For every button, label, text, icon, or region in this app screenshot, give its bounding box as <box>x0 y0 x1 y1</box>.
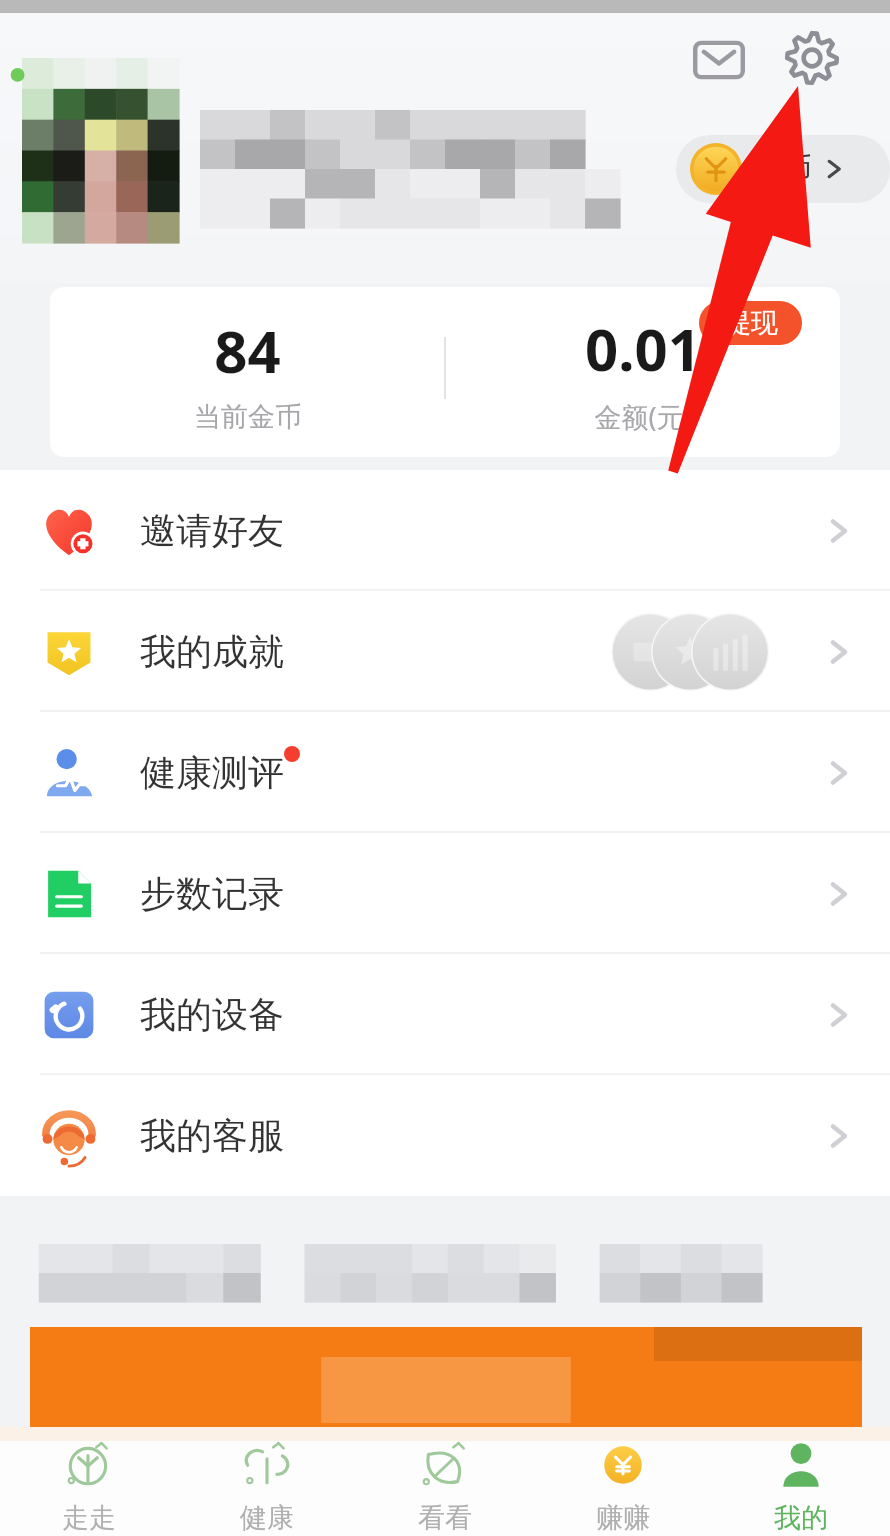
staticText: 邀请好友 <box>140 508 284 553</box>
staticText: 赚赚 <box>596 1501 650 1535</box>
button[interactable]: 我的客服 <box>0 1075 890 1196</box>
button[interactable]: 步数记录 <box>0 833 890 954</box>
staticText: 金额(元) <box>594 398 692 435</box>
button[interactable]: 走走 <box>0 1427 178 1536</box>
staticText: 步数记录 <box>140 871 284 916</box>
button[interactable]: 84 <box>50 287 840 457</box>
staticText: 84 <box>214 311 281 390</box>
button[interactable]: 健康测评 <box>0 712 890 833</box>
staticText: 我的客服 <box>140 1113 284 1158</box>
button[interactable]: Messages <box>686 27 752 93</box>
button[interactable]: 金币 <box>676 135 890 203</box>
staticText: 金币 <box>752 150 812 188</box>
button[interactable]: 邀请好友 <box>0 470 890 591</box>
staticText: 我的 <box>774 1501 828 1535</box>
button[interactable]: 我的 <box>712 1427 890 1536</box>
staticText: 当前金币 <box>194 400 302 434</box>
button[interactable]: 健康 <box>178 1427 356 1536</box>
button[interactable]: 赚赚 <box>534 1427 712 1536</box>
staticText: 健康 <box>240 1501 294 1535</box>
staticText: 看看 <box>418 1501 472 1535</box>
button[interactable] <box>30 1327 862 1427</box>
button[interactable]: 我的成就 <box>0 591 890 712</box>
button[interactable]: 我的设备 <box>0 954 890 1075</box>
staticText: 健康测评 <box>140 750 284 795</box>
staticText: 0.01 <box>585 309 701 388</box>
staticText: 我的设备 <box>140 992 284 1037</box>
staticText: 走走 <box>62 1501 116 1535</box>
staticText: 提现 <box>724 306 778 340</box>
button[interactable]: 提现 <box>699 301 802 345</box>
staticText: 我的成就 <box>140 629 284 674</box>
button[interactable]: Settings <box>778 24 846 92</box>
button[interactable]: 看看 <box>356 1427 534 1536</box>
